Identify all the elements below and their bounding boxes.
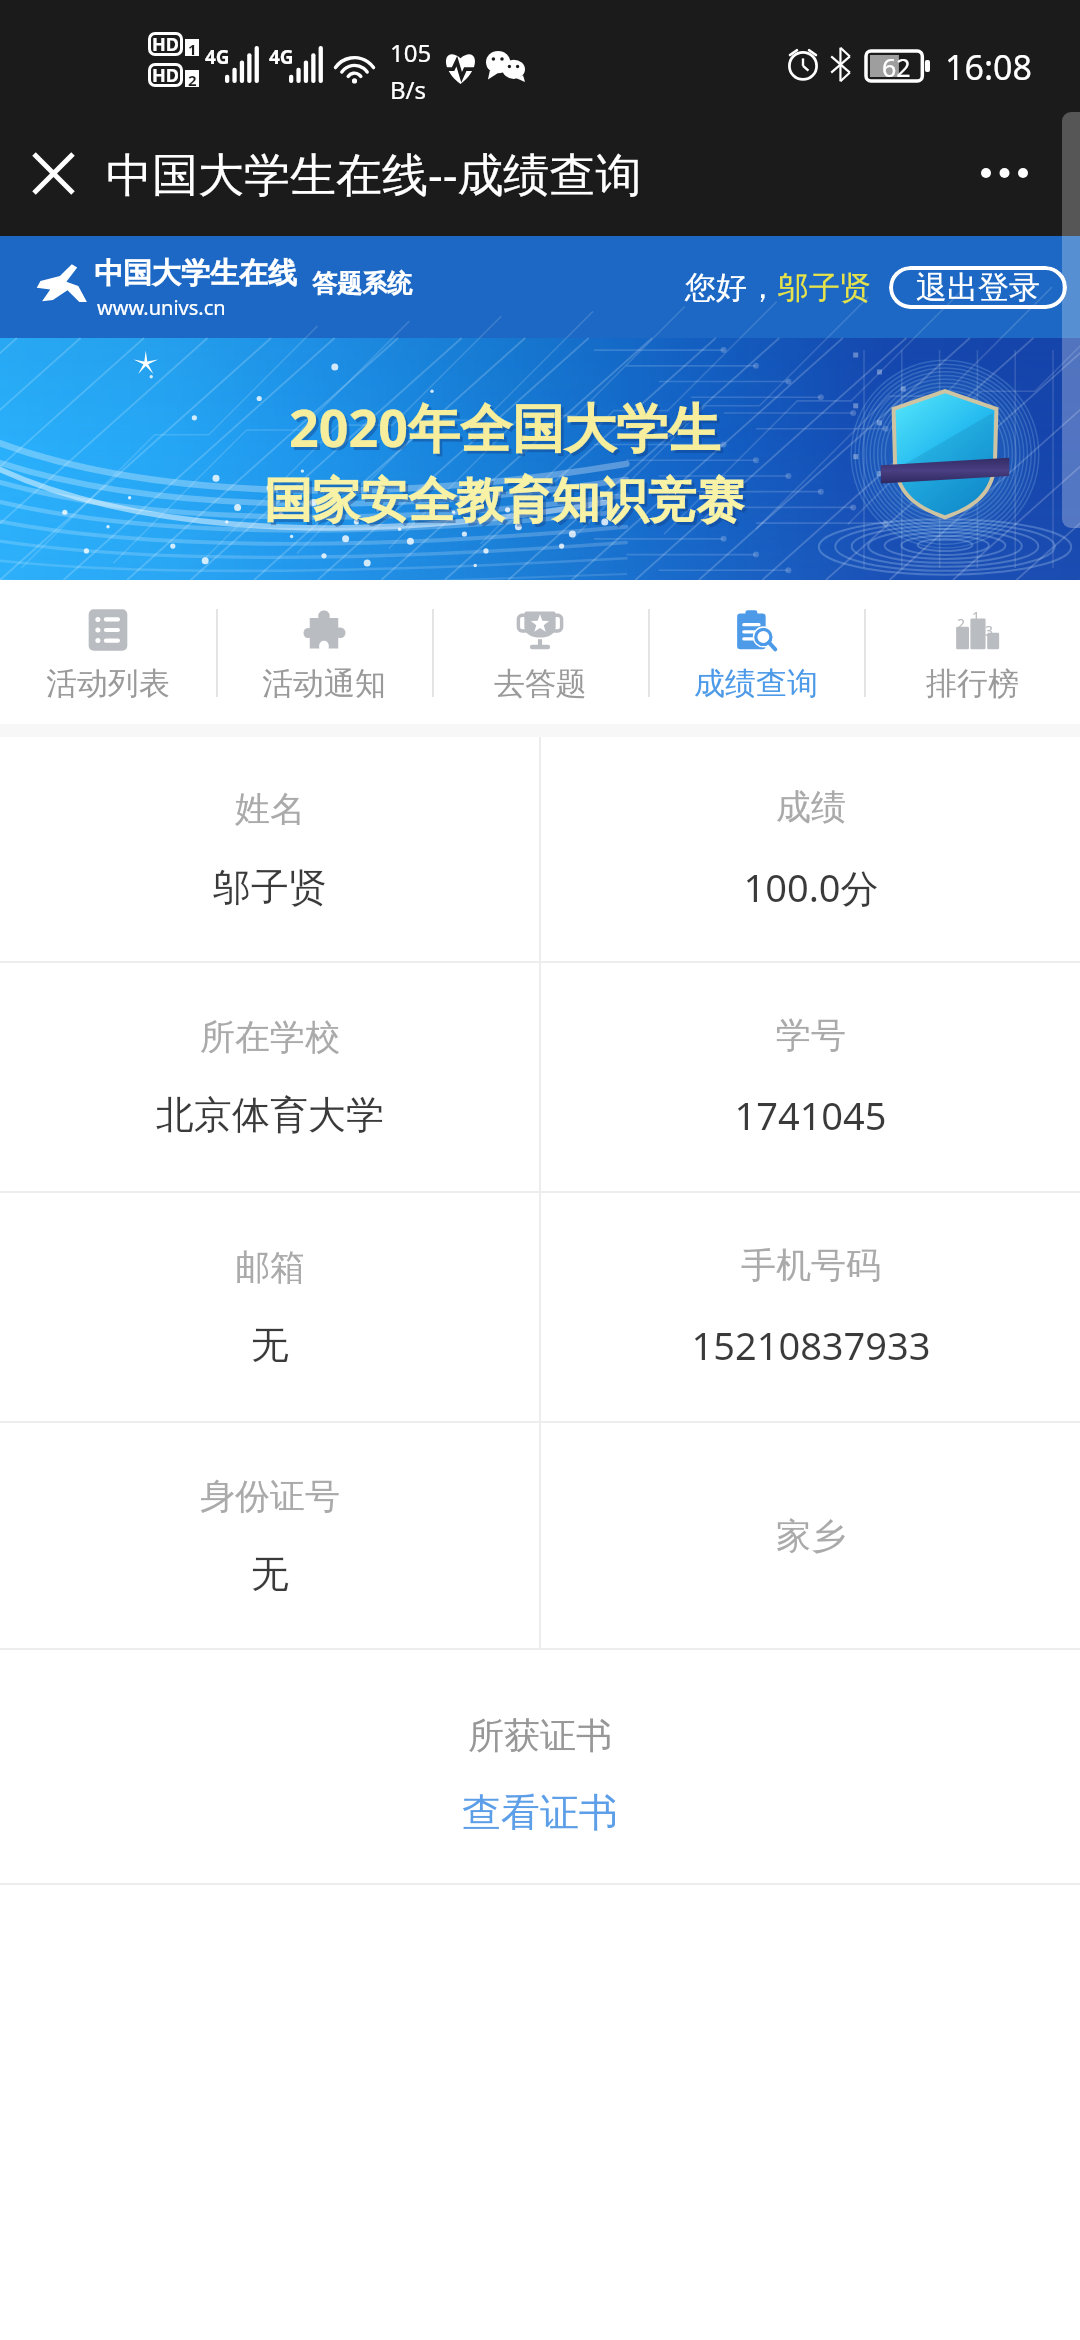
staticText: 手机号码 — [741, 1243, 881, 1287]
staticText: 4G — [205, 44, 230, 70]
button[interactable]: 所在学校 — [0, 963, 539, 1191]
staticText: 成绩查询 — [694, 664, 818, 703]
staticText: 学号 — [776, 1013, 846, 1057]
button[interactable]: Close — [13, 133, 93, 213]
staticText: 活动通知 — [262, 664, 386, 703]
staticText: 中国大学生在线--成绩查询 — [106, 142, 642, 205]
button[interactable]: 学号 — [541, 963, 1080, 1191]
staticText: 4G — [269, 44, 294, 70]
staticText: 国家安全教育知识竞赛 — [264, 471, 744, 531]
staticText: 北京体育大学 — [156, 1091, 384, 1139]
staticText: 成绩 — [776, 785, 846, 829]
staticText: 62 — [882, 50, 911, 84]
staticText: 2020年全国大学生 — [289, 391, 720, 462]
staticText: 3 — [985, 621, 994, 640]
staticText: 中国大学生在线 — [94, 255, 297, 292]
button[interactable]: 成绩查询 — [648, 580, 864, 724]
staticText: 排行榜 — [926, 664, 1019, 703]
button[interactable]: 手机号码 — [541, 1193, 1080, 1421]
staticText: 1 — [188, 39, 197, 56]
staticText: 查看证书 — [462, 1788, 618, 1837]
staticText: 答题系统 — [312, 268, 412, 299]
staticText: 无 — [251, 1550, 289, 1598]
staticText: 2020年全国大学生 — [292, 394, 723, 465]
staticText: 1 — [972, 607, 981, 626]
button[interactable]: 活动列表 — [0, 580, 216, 724]
staticText: 去答题 — [494, 664, 587, 703]
staticText: 邬子贤 — [213, 863, 327, 911]
button[interactable]: More options — [964, 133, 1044, 213]
staticText: 身份证号 — [200, 1474, 340, 1518]
staticText: 邬子贤 — [778, 268, 871, 307]
staticText: HD — [152, 32, 179, 56]
button[interactable]: 家乡 — [541, 1423, 1080, 1648]
button[interactable]: 成绩 — [541, 737, 1080, 961]
staticText: 所在学校 — [200, 1015, 340, 1059]
staticText: 2 — [188, 70, 197, 87]
button[interactable]: 2 — [864, 580, 1080, 724]
staticText: 105 — [390, 36, 432, 69]
staticText: 无 — [251, 1321, 289, 1369]
staticText: www.univs.cn — [97, 294, 226, 321]
button[interactable]: 退出登录 — [916, 266, 1040, 309]
staticText: B/s — [390, 73, 427, 106]
staticText: 活动列表 — [46, 664, 170, 703]
staticText: 16:08 — [945, 44, 1032, 90]
button[interactable]: 去答题 — [432, 580, 648, 724]
button[interactable]: 姓名 — [0, 737, 539, 961]
staticText: 15210837933 — [691, 1319, 931, 1371]
staticText: HD — [152, 63, 179, 87]
staticText: 姓名 — [235, 787, 305, 831]
staticText: 邮箱 — [235, 1245, 305, 1289]
staticText: 退出登录 — [916, 268, 1040, 307]
staticText: 1741045 — [734, 1089, 887, 1141]
button[interactable]: 所获证书 — [0, 1650, 1080, 1883]
staticText: 100.0分 — [743, 861, 879, 913]
staticText: 您好， — [685, 268, 778, 307]
staticText: 家乡 — [776, 1514, 846, 1558]
button[interactable]: 活动通知 — [216, 580, 432, 724]
staticText: 国家安全教育知识竞赛 — [267, 474, 747, 534]
button[interactable]: 身份证号 — [0, 1423, 539, 1648]
staticText: 2 — [957, 614, 966, 633]
staticText: 所获证书 — [468, 1713, 612, 1758]
button[interactable]: 邮箱 — [0, 1193, 539, 1421]
